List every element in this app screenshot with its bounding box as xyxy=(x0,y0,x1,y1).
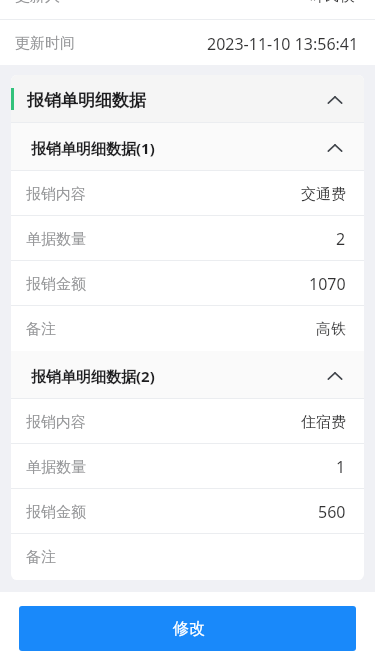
staticText: 高铁 xyxy=(316,317,346,340)
staticText: 更新人 xyxy=(15,0,60,7)
staticText: 报销金额 xyxy=(26,272,86,295)
staticText: 备注 xyxy=(26,545,56,568)
staticText: 报销内容 xyxy=(26,410,86,433)
staticText: 报销金额 xyxy=(26,500,86,523)
button[interactable]: 报销内容 xyxy=(11,399,364,443)
staticText: 修改 xyxy=(173,616,205,640)
other: Collapse section 2 xyxy=(326,370,344,382)
staticText: 2 xyxy=(336,226,346,250)
button[interactable]: 报销金额 xyxy=(11,489,364,533)
staticText: 报销内容 xyxy=(26,182,86,205)
button[interactable]: 更新时间 xyxy=(0,20,375,65)
other: Collapse section 1 xyxy=(326,142,344,154)
staticText: 2023-11-10 13:56:41 xyxy=(207,31,359,55)
staticText: 单据数量 xyxy=(26,227,86,250)
staticText: 备注 xyxy=(26,317,56,340)
staticText: 560 xyxy=(318,499,346,523)
button[interactable]: 报销单明细数据 xyxy=(11,75,364,122)
staticText: 住宿费 xyxy=(301,410,346,433)
button[interactable]: 备注 xyxy=(11,534,364,579)
staticText: 1070 xyxy=(309,271,346,295)
staticText: 叶民侯 xyxy=(310,0,355,7)
button[interactable]: 报销单明细数据(2) xyxy=(11,351,364,398)
button[interactable]: 修改 xyxy=(19,606,356,651)
other: Collapse details xyxy=(326,94,344,106)
button[interactable]: 单据数量 xyxy=(11,216,364,260)
staticText: 更新时间 xyxy=(15,31,75,54)
button[interactable]: 单据数量 xyxy=(11,444,364,488)
staticText: 1 xyxy=(336,454,346,478)
staticText: 报销单明细数据(2) xyxy=(31,364,155,388)
button[interactable]: 报销内容 xyxy=(11,171,364,215)
staticText: 报销单明细数据(1) xyxy=(31,136,155,160)
staticText: 交通费 xyxy=(301,182,346,205)
button[interactable]: 报销金额 xyxy=(11,261,364,305)
button[interactable]: 备注 xyxy=(11,306,364,351)
button[interactable]: 更新人 xyxy=(0,0,375,18)
button[interactable]: 报销单明细数据(1) xyxy=(11,123,364,170)
staticText: 报销单明细数据 xyxy=(27,87,146,113)
staticText: 单据数量 xyxy=(26,455,86,478)
